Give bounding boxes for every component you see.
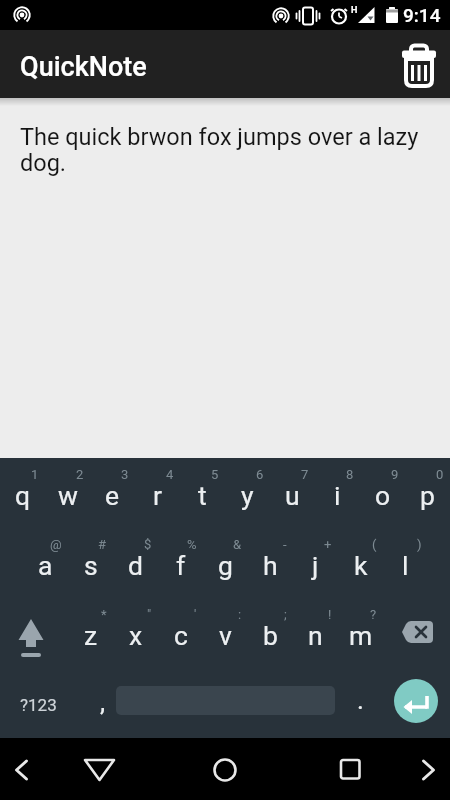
button[interactable]: e	[90, 460, 135, 530]
button[interactable]: o	[360, 460, 405, 530]
staticText: 5	[211, 467, 219, 482]
button[interactable]: z	[68, 600, 113, 670]
button[interactable]: b	[248, 600, 293, 670]
button[interactable]: q	[0, 460, 45, 530]
button[interactable]: n	[293, 600, 338, 670]
button[interactable]	[382, 600, 450, 670]
staticText: 7	[301, 467, 309, 482]
button[interactable]: v	[203, 600, 248, 670]
staticText: @	[50, 537, 62, 552]
staticText: r	[153, 480, 162, 511]
staticText: g	[218, 550, 233, 581]
staticText: y	[241, 480, 254, 511]
staticText: n	[308, 620, 323, 651]
staticText: ?	[370, 607, 377, 622]
button[interactable]: t	[180, 460, 225, 530]
button[interactable]: r	[135, 460, 180, 530]
button[interactable]: f	[158, 530, 203, 600]
staticText: u	[285, 480, 300, 511]
staticText: :	[238, 607, 242, 622]
staticText: $	[144, 537, 152, 552]
staticText: .	[357, 685, 364, 715]
staticText: #	[98, 537, 107, 552]
staticText: t	[198, 480, 207, 511]
button[interactable]: h	[248, 530, 293, 600]
staticText: !	[328, 607, 332, 622]
staticText: h	[263, 550, 278, 581]
staticText: "	[147, 607, 152, 622]
button[interactable]: l	[383, 530, 428, 600]
button[interactable]	[395, 42, 443, 90]
staticText: e	[105, 480, 120, 511]
staticText: x	[129, 620, 143, 651]
button[interactable]	[327, 748, 373, 794]
button[interactable]	[0, 600, 67, 670]
button[interactable]: a	[23, 530, 68, 600]
button[interactable]: d	[113, 530, 158, 600]
button[interactable]	[202, 748, 248, 794]
staticText: 9	[391, 467, 399, 482]
staticText: *	[101, 607, 107, 622]
button[interactable]	[414, 752, 444, 782]
button[interactable]	[76, 748, 122, 794]
staticText: f	[176, 550, 186, 581]
staticText: )	[417, 537, 422, 552]
staticText: %	[187, 537, 197, 552]
button[interactable]: s	[68, 530, 113, 600]
button[interactable]: y	[225, 460, 270, 530]
staticText: 4	[166, 467, 174, 482]
button[interactable]: .	[338, 670, 383, 740]
staticText: m	[349, 620, 373, 651]
staticText: i	[334, 480, 341, 511]
button[interactable]	[6, 752, 36, 782]
button[interactable]: ,	[80, 670, 125, 740]
staticText: o	[375, 480, 391, 511]
button[interactable]: x	[113, 600, 158, 670]
button[interactable]: w	[45, 460, 90, 530]
staticText: 6	[256, 467, 264, 482]
button[interactable]: m	[338, 600, 383, 670]
staticText: v	[219, 620, 232, 651]
button[interactable]: ?123	[0, 670, 76, 740]
staticText: p	[420, 480, 435, 511]
button[interactable]: c	[158, 600, 203, 670]
staticText: w	[58, 480, 78, 511]
staticText: ?123	[20, 695, 57, 715]
staticText: d	[128, 550, 143, 581]
staticText: l	[402, 550, 409, 581]
staticText: ,	[100, 687, 106, 717]
staticText: s	[84, 550, 98, 581]
staticText: ;	[284, 607, 287, 622]
staticText: z	[84, 620, 98, 651]
staticText: 0	[436, 467, 444, 482]
staticText: -	[283, 537, 287, 552]
staticText: q	[15, 480, 31, 511]
button[interactable]: i	[315, 460, 360, 530]
staticText: &	[233, 537, 242, 552]
staticText: b	[263, 620, 278, 651]
button[interactable]: k	[338, 530, 383, 600]
button[interactable]	[394, 679, 438, 723]
button[interactable]: j	[293, 530, 338, 600]
staticText: +	[324, 537, 332, 552]
staticText: '	[194, 607, 197, 622]
button[interactable]: u	[270, 460, 315, 530]
button[interactable]: p	[405, 460, 450, 530]
staticText: 8	[346, 467, 354, 482]
button[interactable]: The quick brwon fox jumps over a lazy do…	[20, 123, 430, 177]
staticText: c	[174, 620, 188, 651]
staticText: k	[354, 550, 368, 581]
staticText: (	[372, 537, 377, 552]
button[interactable]: QuickNote	[20, 51, 147, 83]
staticText: H	[351, 5, 358, 16]
button[interactable]: g	[203, 530, 248, 600]
staticText: 3	[121, 467, 129, 482]
staticText: 2	[76, 467, 84, 482]
staticText: 9:14	[403, 4, 441, 26]
staticText: 1	[31, 467, 39, 482]
staticText: j	[312, 550, 319, 581]
staticText: a	[38, 550, 53, 581]
staticText: QuickNote	[20, 51, 147, 83]
